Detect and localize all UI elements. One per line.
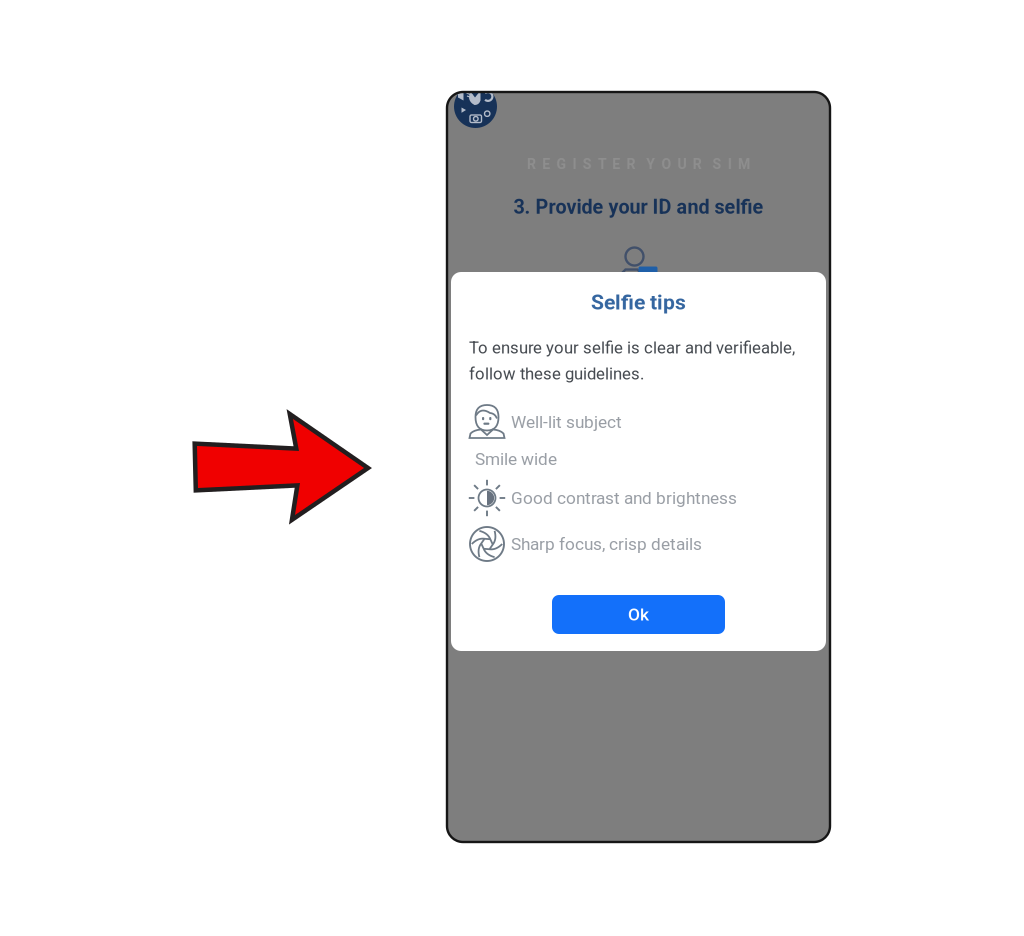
staticText: 3. Provide your ID and selfie	[513, 195, 763, 218]
staticText: Ok	[628, 604, 649, 625]
staticText: Selfie tips	[591, 290, 686, 315]
staticText: Good contrast and brightness	[511, 488, 737, 508]
staticText: R E G I S T E R Y O U R S I M	[527, 156, 750, 172]
staticText: follow these guidelines.	[469, 364, 644, 383]
staticText: Smile wide	[475, 449, 557, 469]
staticText: To ensure your selfie is clear and verif…	[469, 338, 795, 357]
staticText: Sharp focus, crisp details	[511, 534, 702, 554]
staticText: Well-lit subject	[511, 412, 622, 432]
button[interactable]: Ok	[552, 595, 725, 634]
